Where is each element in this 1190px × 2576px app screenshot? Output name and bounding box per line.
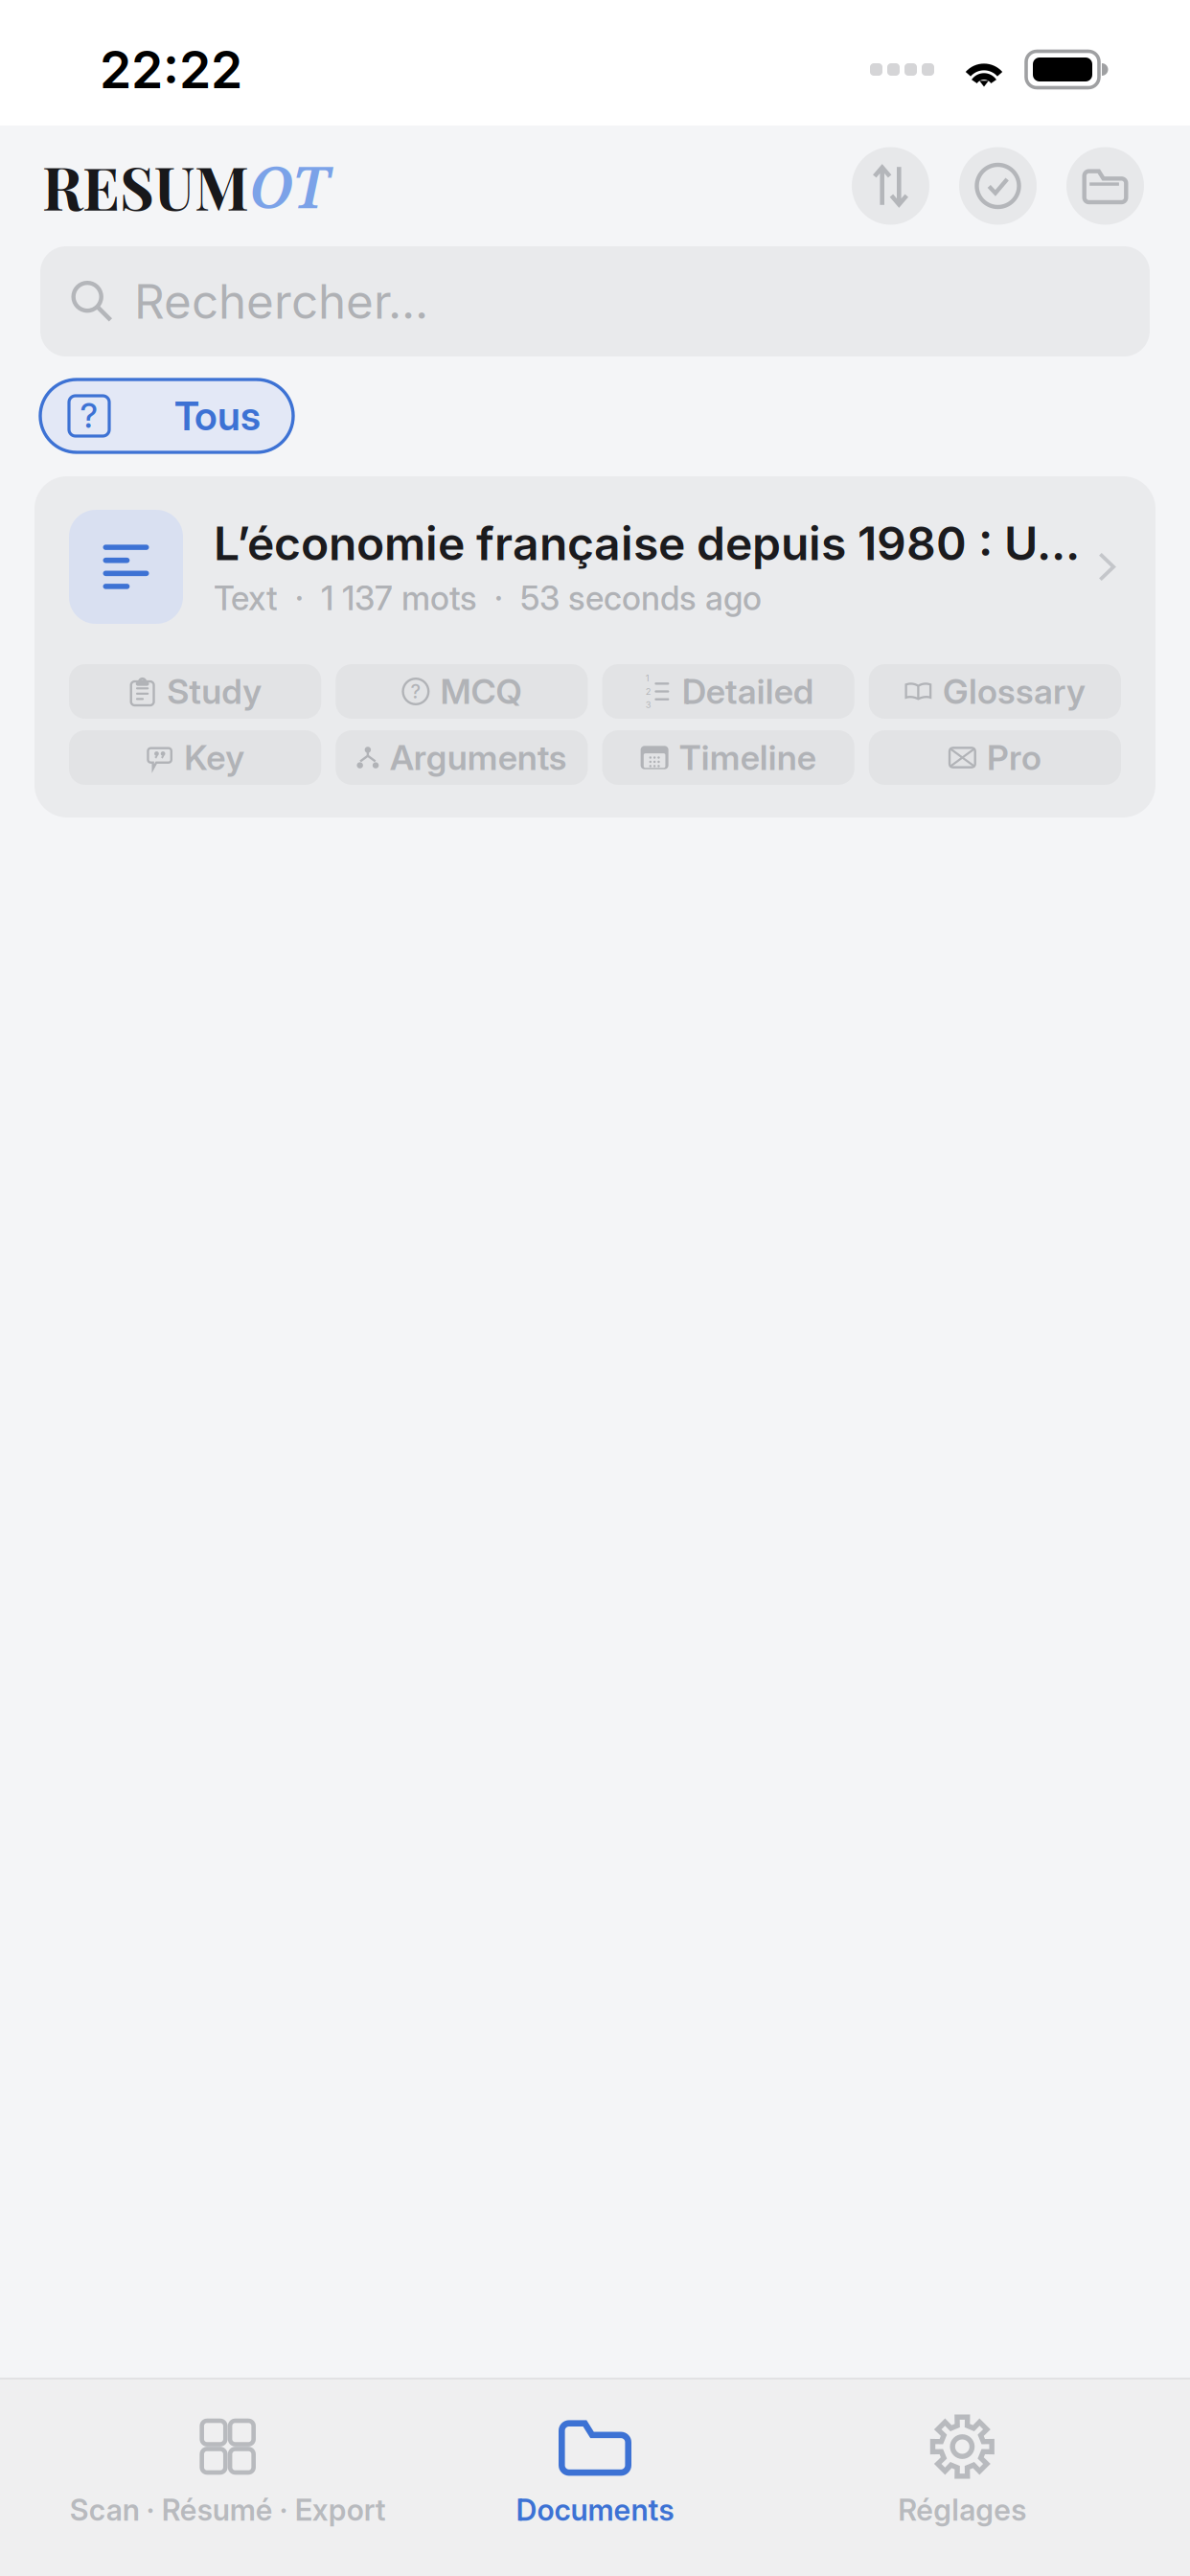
staticText: 2	[646, 686, 651, 697]
staticText: Tous	[174, 392, 261, 440]
button[interactable]: Study	[69, 664, 321, 719]
staticText: 1	[646, 673, 649, 684]
button[interactable]: ?	[40, 379, 293, 452]
button[interactable]: Dossiers	[1066, 147, 1144, 225]
button[interactable]: ?	[336, 664, 588, 719]
staticText: L’économie française depuis 1980 : U...	[214, 516, 1080, 571]
staticText: MCQ	[440, 671, 522, 712]
staticText: Detailed	[682, 671, 813, 712]
button[interactable]: Réglages	[779, 2410, 1146, 2529]
staticText: Pro	[987, 737, 1041, 778]
staticText: Arguments	[390, 737, 567, 778]
button[interactable]: Trier	[852, 147, 929, 225]
staticText: OT	[249, 147, 329, 225]
staticText: ?	[410, 680, 421, 703]
staticText: ?	[80, 396, 98, 436]
staticText: 3	[646, 699, 651, 710]
button[interactable]: Rechercher...	[40, 246, 1150, 356]
button[interactable]: Arguments	[336, 730, 588, 785]
staticText: Timeline	[679, 737, 816, 778]
staticText: Key	[184, 737, 244, 778]
button[interactable]: Pro	[869, 730, 1121, 785]
button[interactable]: Documents	[411, 2410, 779, 2529]
staticText: Réglages	[898, 2492, 1026, 2528]
staticText: Study	[167, 671, 262, 712]
button[interactable]: L’économie française depuis 1980 : U...	[69, 510, 1121, 624]
button[interactable]: Timeline	[602, 730, 854, 785]
staticText: Rechercher...	[134, 273, 428, 330]
staticText: RESUM	[42, 147, 249, 225]
staticText: Glossary	[943, 671, 1085, 712]
button[interactable]: 1	[602, 664, 854, 719]
button[interactable]: Glossary	[869, 664, 1121, 719]
staticText: Documents	[516, 2492, 674, 2528]
button[interactable]: Scan · Résumé · Export	[44, 2410, 411, 2529]
staticText: Scan · Résumé · Export	[70, 2492, 386, 2528]
staticText: Text · 1 137 mots · 53 seconds ago	[214, 578, 762, 618]
button[interactable]: Sélectionner	[959, 147, 1037, 225]
staticText: 22:22	[100, 39, 242, 100]
button[interactable]: Key	[69, 730, 321, 785]
